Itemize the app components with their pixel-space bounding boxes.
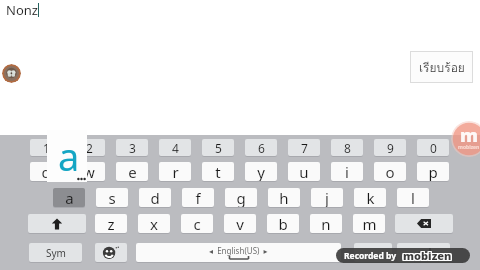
button[interactable]: i [331,162,363,181]
staticText: j [325,188,329,207]
button[interactable]: Profile picture [2,64,21,83]
button[interactable]: f [182,188,214,207]
staticText: t [215,162,221,181]
staticText: o [385,162,395,181]
staticText: x [150,214,158,233]
staticText: m [362,214,377,233]
button[interactable]: 9 [374,139,406,156]
staticText: 6 [258,140,265,156]
button[interactable]: y [245,162,277,181]
button[interactable]: Emoji [95,243,127,262]
staticText: mobizen [404,248,453,263]
button[interactable]: x [138,214,170,233]
staticText: d [150,188,160,207]
button[interactable]: q [30,162,62,181]
button[interactable]: เรียบร้อย [411,52,472,82]
button[interactable]: Mobizen recorder [451,121,480,157]
button[interactable]: j [311,188,343,207]
staticText: g [236,188,246,207]
staticText: a [58,130,80,182]
staticText: 4 [172,140,179,156]
staticText: 5 [215,140,222,156]
staticText: n [321,214,331,233]
staticText: mobizen [403,249,452,263]
staticText: y [257,162,265,181]
button[interactable]: e [116,162,148,181]
button[interactable]: h [268,188,300,207]
button[interactable]: 3 [116,139,148,156]
staticText: q [41,162,51,181]
button[interactable]: 2 [73,139,105,156]
staticText: k [366,188,375,207]
staticText: u [299,162,309,181]
button[interactable]: 7 [288,139,320,156]
button[interactable]: 8 [331,139,363,156]
staticText: 9 [387,140,394,156]
staticText: เรียบร้อย [419,58,465,77]
button[interactable]: u [288,162,320,181]
staticText: mobizen [402,248,451,262]
staticText: e [128,162,137,181]
button[interactable]: Enter [397,243,450,262]
staticText: . [371,244,375,262]
staticText: a [65,188,74,207]
button[interactable]: v [224,214,256,233]
button[interactable]: Shift [28,214,86,233]
button[interactable]: a [53,188,85,207]
button[interactable]: 0 [417,139,449,156]
staticText: mobizen [402,248,451,263]
button[interactable]: 5 [202,139,234,156]
staticText: z [107,214,115,233]
staticText: p [428,162,438,181]
button[interactable]: g [225,188,257,207]
button[interactable]: 6 [245,139,277,156]
button[interactable]: p [417,162,449,181]
staticText: 0 [430,140,437,156]
staticText: Recorded by [344,250,397,262]
staticText: 7 [301,140,308,156]
staticText: mobizen [402,249,451,263]
button[interactable]: o [374,162,406,181]
staticText: 8 [344,140,351,156]
button[interactable]: m [353,214,385,233]
staticText: b [278,214,288,233]
button[interactable]: Sym [29,243,82,262]
staticText: f [195,188,201,207]
staticText: r [172,162,179,181]
staticText: 1 [43,140,50,156]
staticText: Nonz [6,1,38,19]
staticText: 2 [86,140,93,156]
staticText: mobizen [404,249,453,263]
staticText: mobizen [403,248,452,263]
button[interactable]: l [397,188,429,207]
button[interactable]: w [73,162,105,181]
staticText: mobizen [404,248,453,262]
button[interactable]: z [95,214,127,233]
button[interactable]: t [202,162,234,181]
staticText: s [108,188,116,207]
staticText: ◂ English(US) ▸ [209,245,268,256]
staticText: c [193,214,201,233]
button[interactable]: c [181,214,213,233]
staticText: 3 [129,140,136,156]
button[interactable]: 4 [159,139,191,156]
button[interactable]: k [354,188,386,207]
button[interactable]: s [96,188,128,207]
button[interactable]: b [267,214,299,233]
staticText: v [236,214,244,233]
staticText: Sym [46,246,66,260]
button[interactable]: d [139,188,171,207]
staticText: l [411,188,415,207]
staticText: i [345,162,349,181]
button[interactable]: 1 [30,139,62,156]
button[interactable]: Backspace [395,214,453,233]
button[interactable]: r [159,162,191,181]
button[interactable]: n [310,214,342,233]
staticText: h [279,188,289,207]
staticText: w [83,162,95,181]
staticText: mobizen [458,144,480,151]
button[interactable]: Space [136,243,341,262]
staticText: m [460,123,478,148]
button[interactable]: . [354,243,392,262]
staticText: mobizen [403,248,452,262]
